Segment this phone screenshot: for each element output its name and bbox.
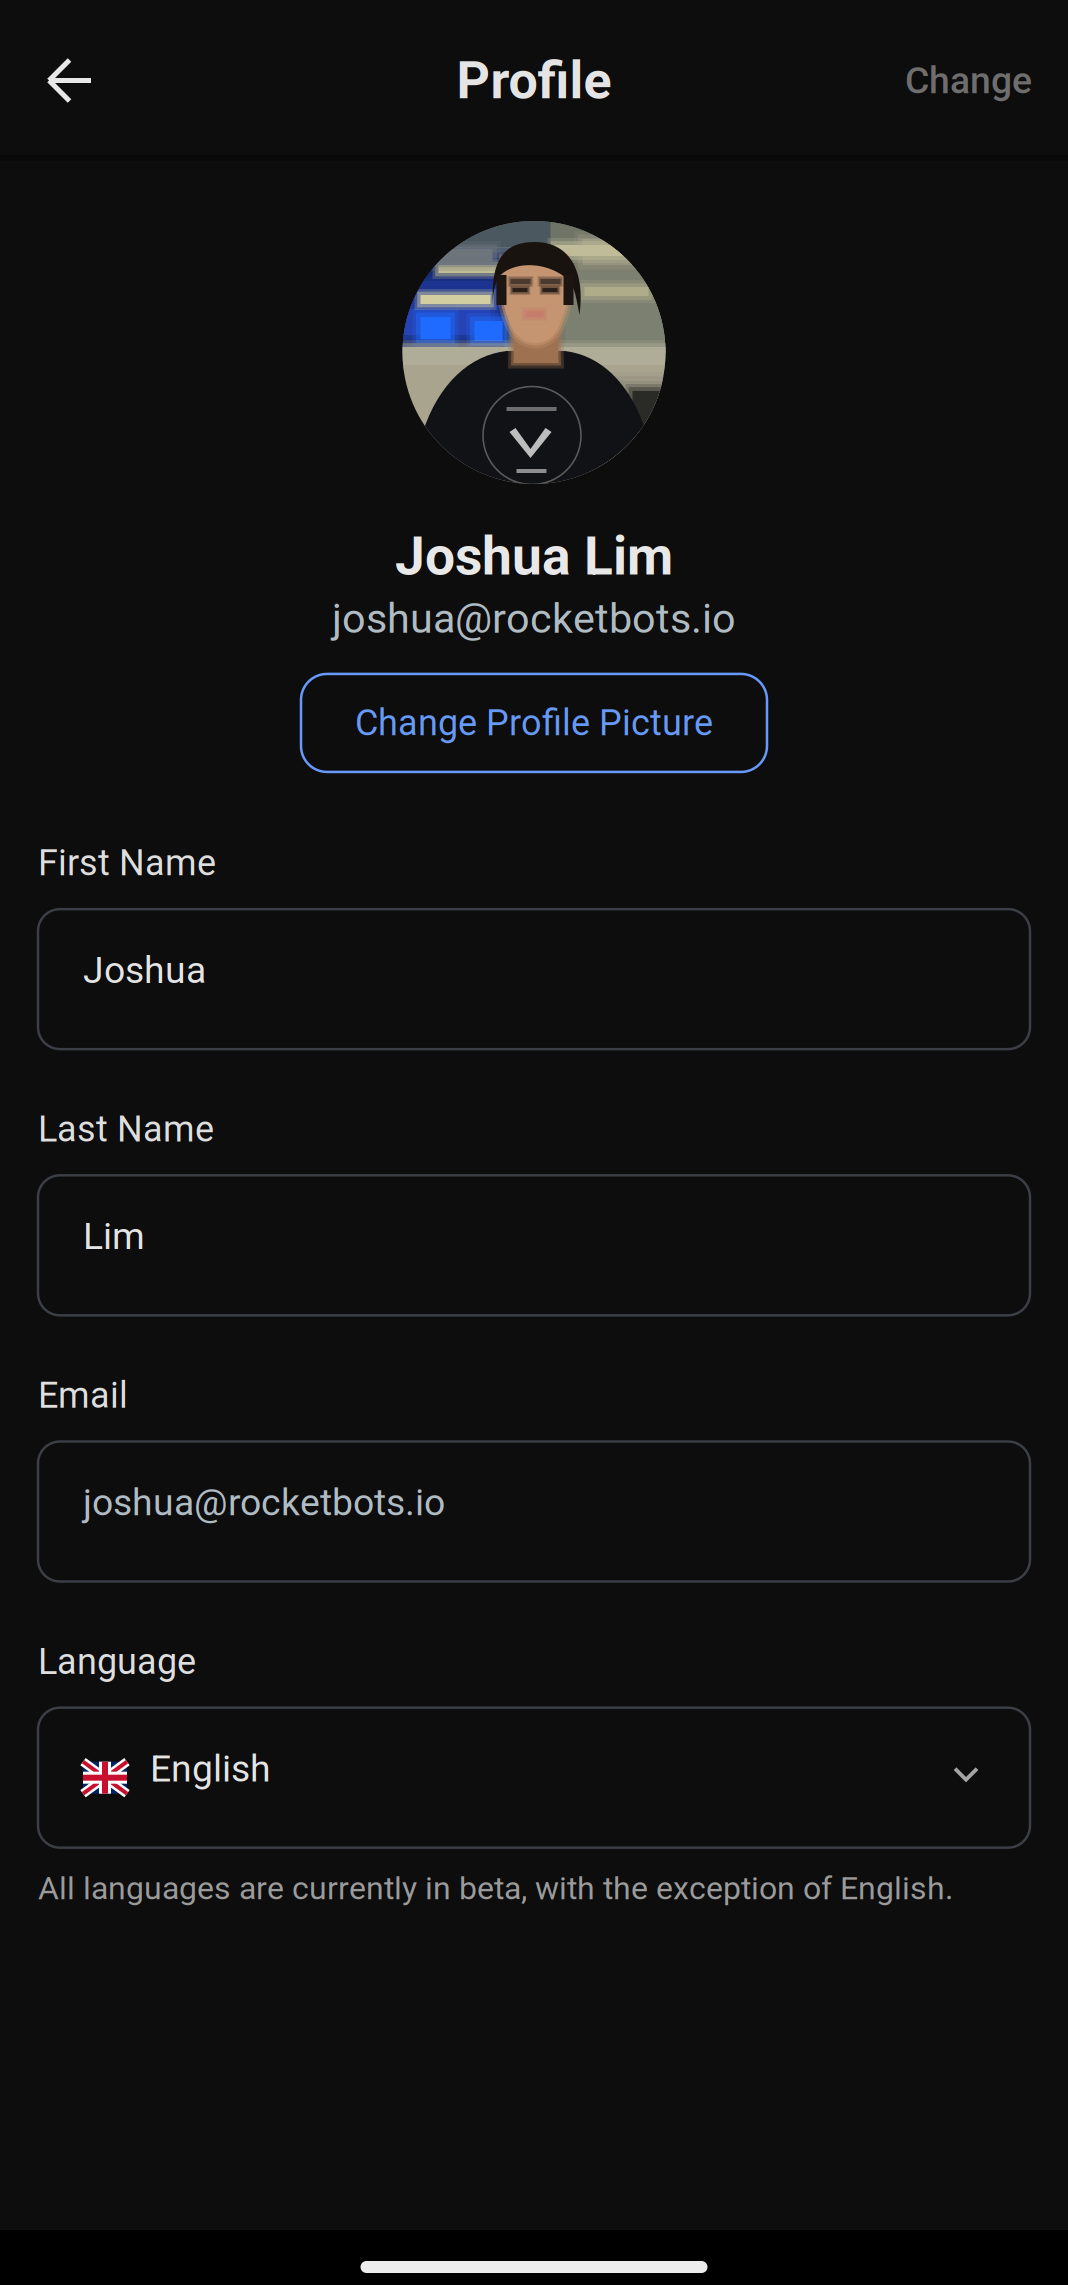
button[interactable]: English [38, 1708, 1030, 1848]
staticText: Email [38, 1374, 128, 1416]
staticText: English [150, 1747, 271, 1790]
staticText: Joshua Lim [395, 525, 673, 587]
button[interactable]: joshua@rocketbots.io [38, 1441, 1030, 1581]
staticText: First Name [38, 842, 216, 884]
button[interactable]: Change Profile Picture [301, 674, 767, 772]
staticText: Change [905, 59, 1032, 102]
staticText: Joshua [83, 948, 206, 992]
staticText: Lim [83, 1214, 145, 1258]
staticText: joshua@rocketbots.io [83, 1481, 445, 1524]
staticText: Language [38, 1640, 196, 1683]
staticText: Last Name [38, 1108, 214, 1150]
staticText: Profile [456, 50, 611, 111]
button[interactable]: Change [832, 17, 1068, 137]
staticText: All languages are currently in beta, wit… [38, 1870, 953, 1907]
button[interactable]: Lim [38, 1175, 1030, 1315]
button[interactable]: Back [0, 17, 140, 137]
button[interactable]: Joshua [38, 909, 1030, 1049]
staticText: joshua@rocketbots.io [332, 594, 736, 643]
staticText: Change Profile Picture [355, 702, 713, 744]
